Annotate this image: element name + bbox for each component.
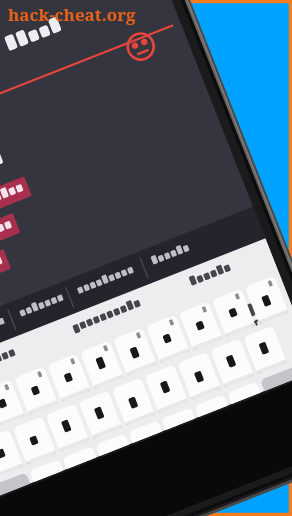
button[interactable]: Rhymer's Block app screenshot xyxy=(0,0,292,516)
